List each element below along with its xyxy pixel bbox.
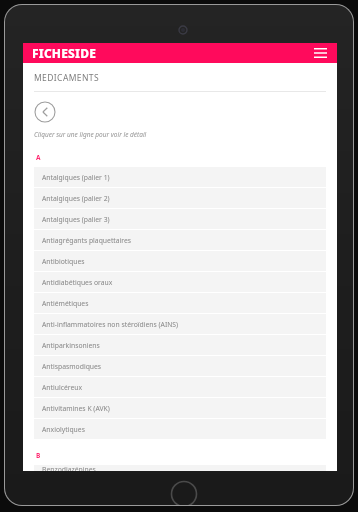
staticText: Anti-inflammatoires non stéroïdiens (AIN… bbox=[42, 320, 179, 329]
button[interactable]: Antidiabétiques oraux bbox=[34, 272, 326, 292]
button[interactable]: Home bbox=[170, 480, 198, 505]
button[interactable]: Menu bbox=[312, 45, 328, 61]
button[interactable]: Antiulcéreux bbox=[34, 377, 326, 397]
button[interactable]: Antiparkinsoniens bbox=[34, 335, 326, 355]
staticText: Antalgiques (palier 3) bbox=[42, 215, 110, 224]
staticText: Antidiabétiques oraux bbox=[42, 278, 113, 287]
staticText: B bbox=[36, 451, 41, 460]
button[interactable]: Antalgiques (palier 1) bbox=[34, 167, 326, 187]
staticText: Antivitamines K (AVK) bbox=[42, 404, 110, 413]
staticText: Antalgiques (palier 1) bbox=[42, 173, 110, 182]
button[interactable]: Antalgiques (palier 2) bbox=[34, 188, 326, 208]
staticText: Antiparkinsoniens bbox=[42, 341, 100, 350]
staticText: Antiulcéreux bbox=[42, 383, 83, 392]
button[interactable]: Anti-inflammatoires non stéroïdiens (AIN… bbox=[34, 314, 326, 334]
staticText: Benzodiazépines bbox=[42, 465, 96, 471]
staticText: Antiémétiques bbox=[42, 299, 89, 308]
staticText: FICHESIDE bbox=[32, 45, 97, 61]
button[interactable]: Antalgiques (palier 3) bbox=[34, 209, 326, 229]
button[interactable]: Anxiolytiques bbox=[34, 419, 326, 439]
button[interactable]: Back bbox=[34, 101, 56, 123]
button[interactable]: Antiagrégants plaquettaires bbox=[34, 230, 326, 250]
staticText: MEDICAMENTS bbox=[34, 72, 100, 84]
button[interactable]: Benzodiazépines bbox=[34, 465, 326, 471]
button[interactable]: Antibiotiques bbox=[34, 251, 326, 271]
staticText: A bbox=[36, 153, 41, 162]
button[interactable]: Antiémétiques bbox=[34, 293, 326, 313]
button[interactable]: FICHESIDE bbox=[32, 45, 97, 61]
staticText: Antalgiques (palier 2) bbox=[42, 194, 110, 203]
staticText: Anxiolytiques bbox=[42, 425, 85, 434]
button[interactable]: Antivitamines K (AVK) bbox=[34, 398, 326, 418]
button[interactable]: Antispasmodiques bbox=[34, 356, 326, 376]
staticText: Antibiotiques bbox=[42, 257, 85, 266]
staticText: Cliquer sur une ligne pour voir le détai… bbox=[34, 130, 147, 139]
staticText: Antiagrégants plaquettaires bbox=[42, 236, 132, 245]
staticText: Antispasmodiques bbox=[42, 362, 102, 371]
